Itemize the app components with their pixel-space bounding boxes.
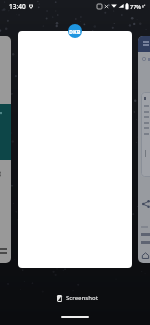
button[interactable]: Screenshot [56,292,99,304]
staticText: Screenshot [66,294,98,302]
staticText: 77% [130,3,141,10]
button[interactable] [0,36,11,263]
button[interactable] [138,36,150,263]
staticText: DKB [69,28,81,35]
other: DKB app [68,24,82,38]
staticText: 13:40 [9,2,26,11]
button[interactable] [18,31,132,268]
